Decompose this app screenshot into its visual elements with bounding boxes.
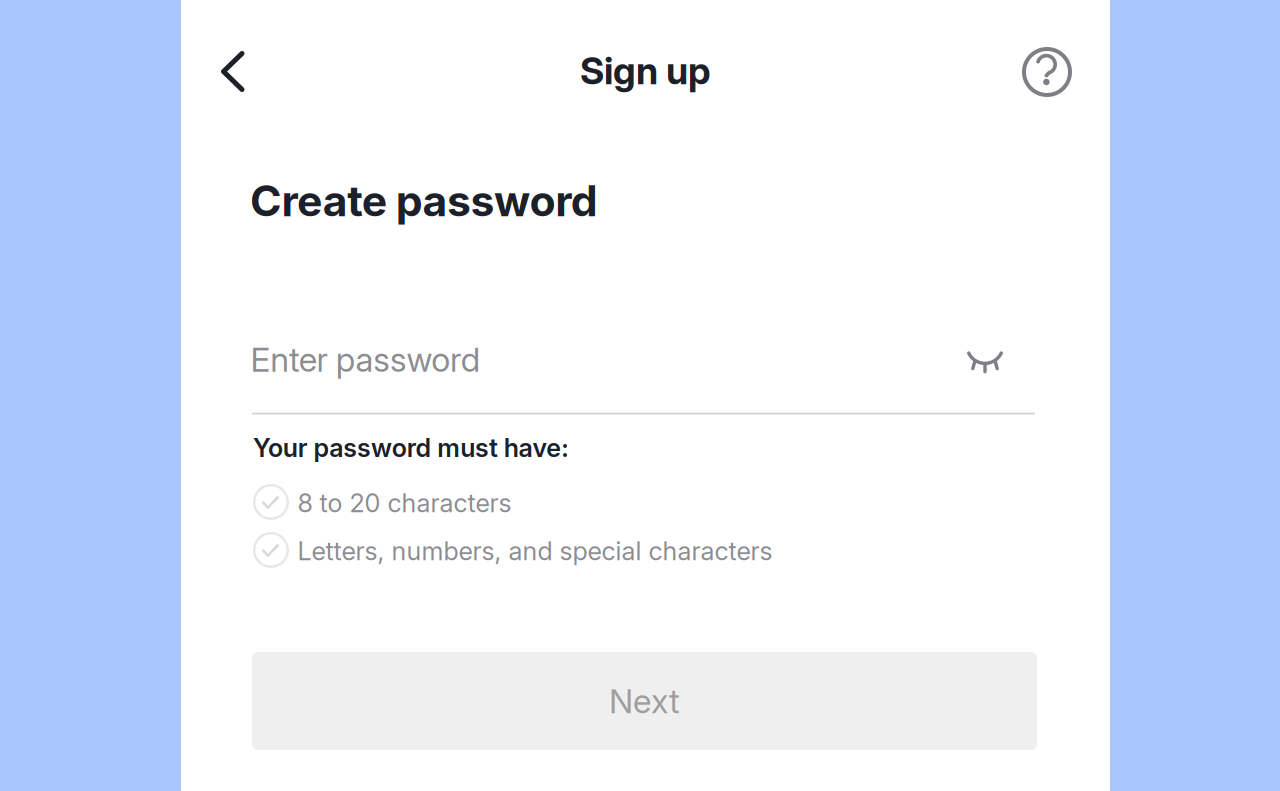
- button[interactable]: Back: [199, 38, 266, 105]
- staticText: Enter password: [251, 339, 480, 380]
- staticText: 8 to 20 characters: [297, 488, 511, 518]
- staticText: Next: [609, 681, 680, 721]
- staticText: Your password must have:: [253, 432, 568, 463]
- staticText: Letters, numbers, and special characters: [297, 536, 772, 566]
- button[interactable]: Show password: [952, 337, 1018, 389]
- button[interactable]: Next: [252, 652, 1037, 750]
- staticText: Create password: [250, 175, 598, 227]
- staticText: Sign up: [580, 48, 711, 93]
- button[interactable]: Help: [1005, 30, 1088, 113]
